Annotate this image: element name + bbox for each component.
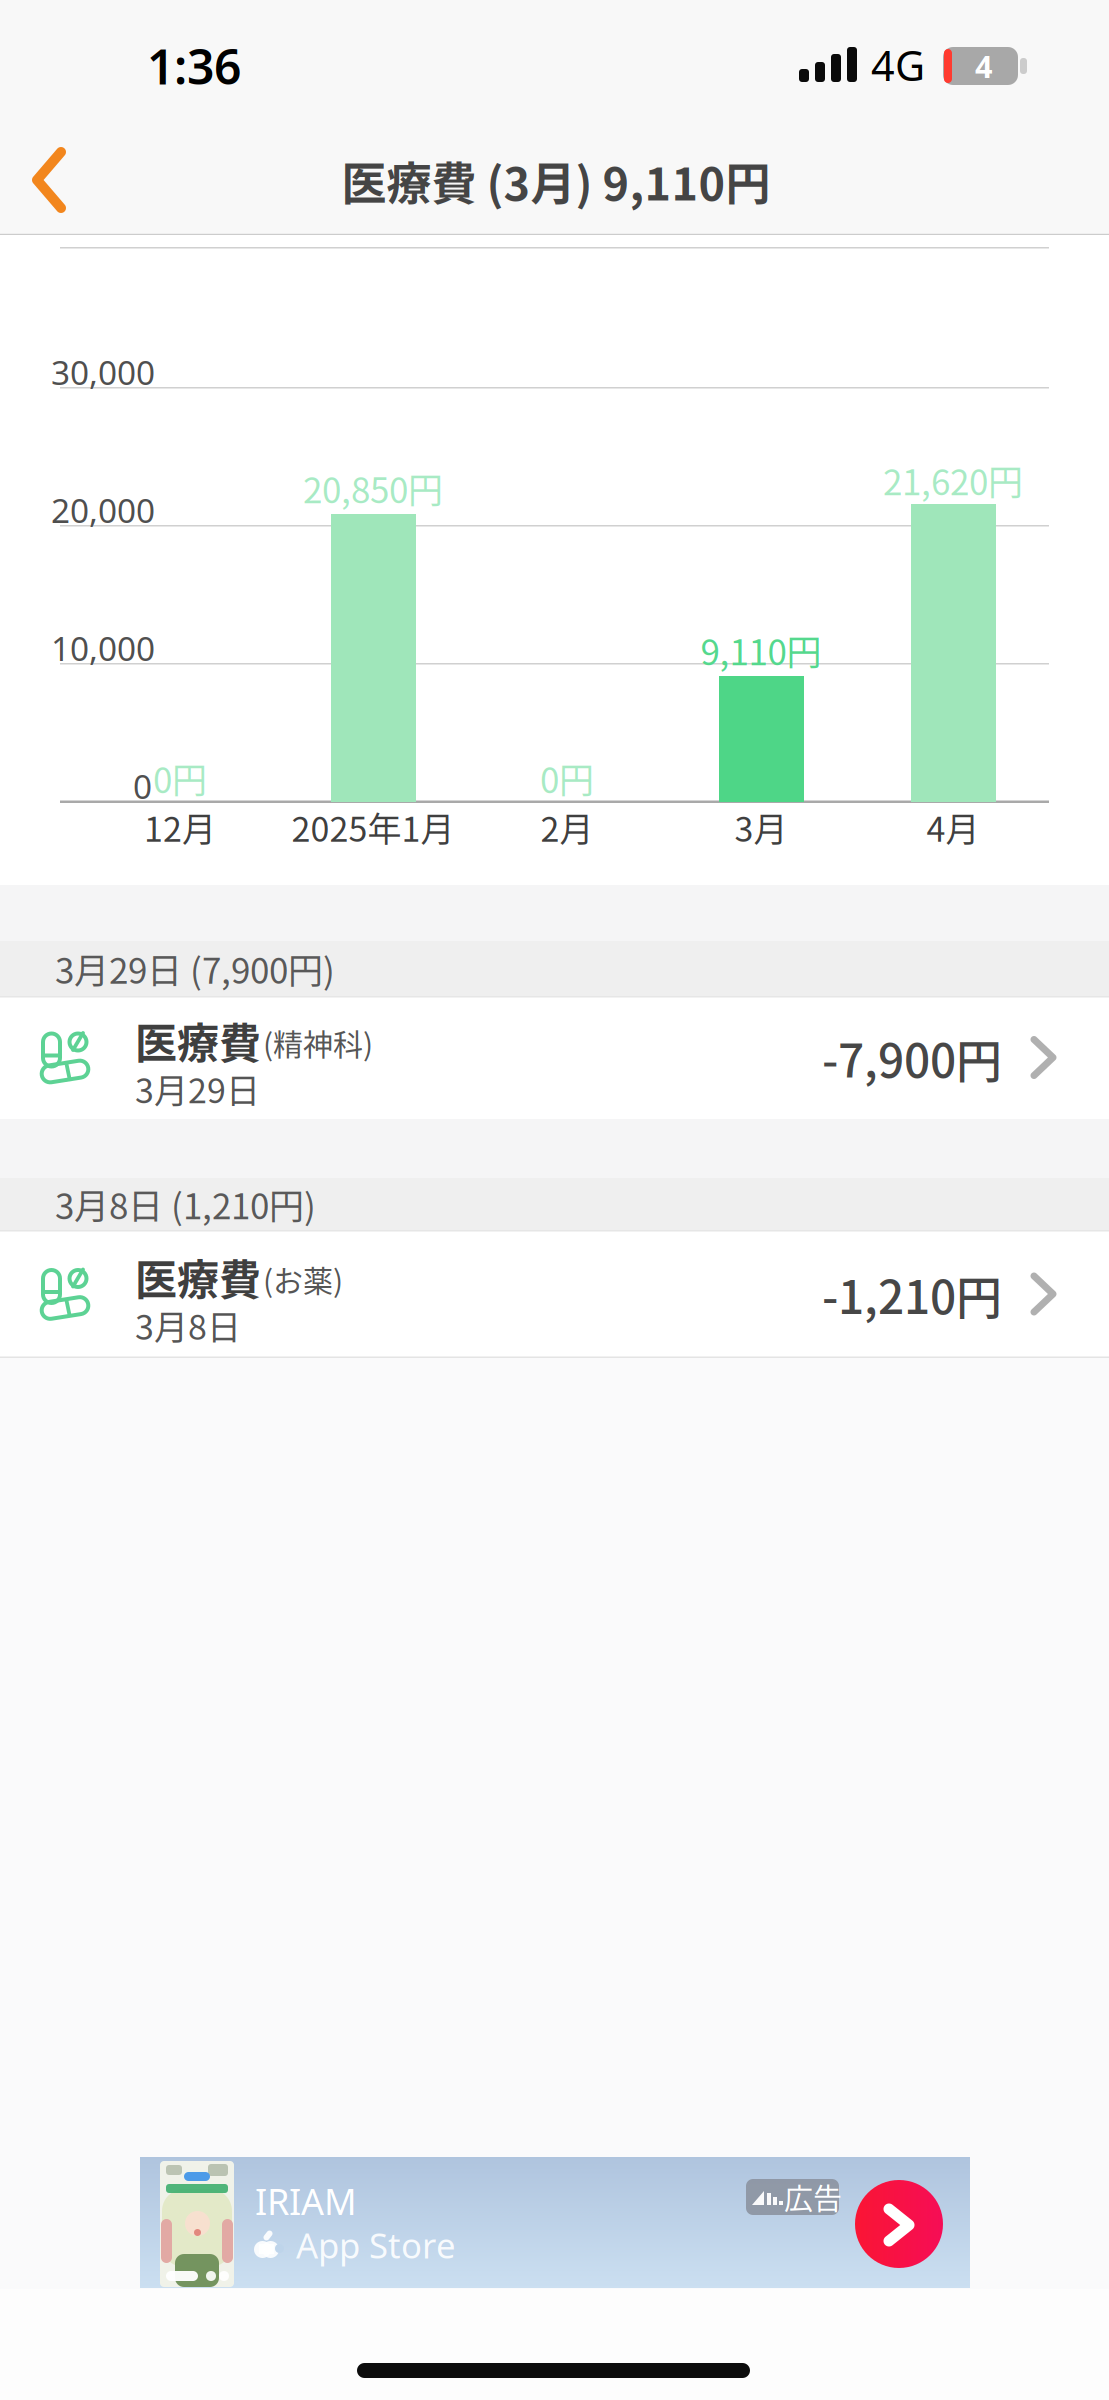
button[interactable] [10, 140, 110, 220]
staticText: (お薬) [263, 1257, 343, 1301]
button[interactable]: 医療費 [0, 1230, 1109, 1358]
staticText: 3月29日 [135, 1064, 260, 1113]
staticText: -7,900円 [822, 1024, 1002, 1091]
staticText: 9,110円 [700, 625, 821, 675]
staticText: 医療費 [135, 1010, 261, 1071]
staticText: 3月8日 (1,210円) [55, 1179, 316, 1229]
staticText: 2月 [540, 802, 593, 852]
staticText: 0円 [153, 753, 207, 803]
staticText: 12月 [144, 802, 216, 852]
staticText: App Store [296, 2222, 456, 2268]
staticText: 4月 [926, 802, 979, 852]
staticText: 0 [133, 764, 152, 808]
staticText: 医療費 (3月) 9,110円 [341, 148, 770, 214]
staticText: 3月 [734, 802, 787, 852]
staticText: 1:36 [147, 34, 241, 98]
staticText: 21,620円 [883, 455, 1023, 505]
staticText: 2025年1月 [291, 802, 454, 852]
staticText: 4G [871, 38, 925, 92]
staticText: 30,000 [51, 350, 155, 394]
staticText: 20,000 [51, 488, 155, 532]
staticText: 4 [975, 46, 993, 86]
staticText: IRIAM [255, 2177, 357, 2225]
staticText: 3月8日 [135, 1300, 241, 1350]
button[interactable]: IRIAM [140, 2157, 970, 2288]
staticText: 医療費 [135, 1247, 261, 1307]
staticText: 0円 [540, 753, 594, 803]
staticText: (精神科) [263, 1021, 373, 1064]
staticText: 広告 [784, 2176, 842, 2218]
staticText: 3月29日 (7,900円) [55, 943, 335, 994]
staticText: 20,850円 [303, 463, 443, 513]
button[interactable]: 医療費 [0, 996, 1109, 1119]
staticText: -1,210円 [822, 1261, 1002, 1327]
staticText: 10,000 [51, 626, 155, 670]
